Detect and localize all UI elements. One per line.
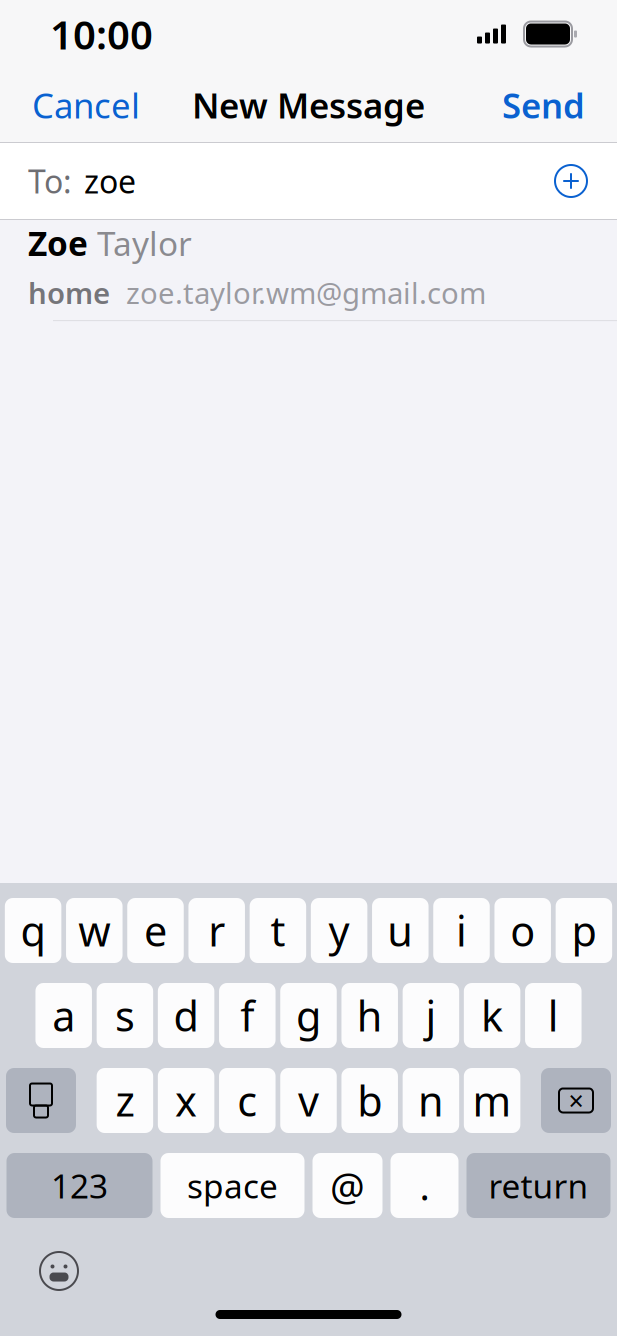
button[interactable]: o	[494, 898, 551, 963]
staticText: @	[330, 1160, 365, 1211]
button[interactable]: @	[312, 1153, 382, 1218]
staticText: p	[571, 903, 596, 958]
staticText: a	[52, 988, 75, 1043]
staticText: n	[418, 1073, 444, 1128]
staticText: x	[175, 1073, 197, 1128]
button[interactable]: d	[158, 983, 214, 1048]
staticText: f	[240, 988, 254, 1043]
staticText: o	[510, 903, 535, 958]
staticText: d	[174, 988, 199, 1043]
button[interactable]: t	[250, 898, 306, 963]
button[interactable]: v	[280, 1068, 337, 1133]
button[interactable]: w	[66, 898, 123, 963]
staticText: .	[419, 1160, 429, 1211]
staticText: Taylor	[88, 221, 192, 265]
button[interactable]: c	[219, 1068, 276, 1133]
button[interactable]: n	[403, 1068, 459, 1133]
staticText: u	[387, 903, 413, 958]
staticText: Cancel	[32, 82, 140, 128]
staticText: b	[357, 1073, 382, 1128]
staticText: zoe.taylor.wm@gmail.com	[110, 273, 486, 312]
staticText: w	[78, 903, 110, 958]
button[interactable]: u	[372, 898, 429, 963]
button[interactable]: l	[525, 983, 581, 1048]
button[interactable]: Emoji	[28, 1240, 90, 1302]
button[interactable]: x	[158, 1068, 214, 1133]
staticText: j	[425, 988, 436, 1043]
button[interactable]: Shift	[6, 1068, 76, 1133]
button[interactable]: f	[219, 983, 276, 1048]
staticText: return	[488, 1163, 588, 1208]
staticText: e	[144, 903, 167, 958]
staticText: 10:00	[50, 7, 153, 60]
button[interactable]: 123	[6, 1153, 152, 1218]
button[interactable]: h	[341, 983, 398, 1048]
staticText: Zoe	[28, 221, 88, 265]
staticText: ×	[568, 1083, 583, 1118]
staticText: q	[21, 903, 46, 958]
button[interactable]: i	[433, 898, 490, 963]
button[interactable]: Delete	[541, 1068, 611, 1133]
button[interactable]: e	[127, 898, 184, 963]
staticText: zoe	[84, 160, 136, 202]
button[interactable]: space	[160, 1153, 304, 1218]
button[interactable]: q	[5, 898, 61, 963]
button[interactable]: z	[97, 1068, 153, 1133]
staticText: m	[473, 1073, 512, 1128]
staticText: y	[329, 903, 350, 958]
button[interactable]: s	[97, 983, 153, 1048]
button[interactable]: Send	[488, 72, 599, 138]
button[interactable]: m	[464, 1068, 520, 1133]
button[interactable]: k	[464, 983, 520, 1048]
staticText: z	[115, 1073, 134, 1128]
button[interactable]: .	[390, 1153, 458, 1218]
button[interactable]: p	[556, 898, 612, 963]
staticText: home	[28, 273, 110, 312]
button[interactable]: return	[466, 1153, 610, 1218]
button[interactable]: Zoe	[0, 220, 617, 306]
button[interactable]: Cancel	[18, 72, 154, 138]
staticText: g	[296, 988, 321, 1043]
button[interactable]: Add contact	[547, 157, 595, 205]
staticText: c	[237, 1073, 257, 1128]
staticText: space	[187, 1163, 278, 1208]
staticText: 123	[51, 1163, 108, 1208]
staticText: s	[115, 988, 135, 1043]
staticText: i	[456, 903, 467, 958]
staticText: v	[298, 1073, 319, 1128]
staticText: r	[208, 903, 225, 958]
staticText: k	[481, 988, 503, 1043]
staticText: New Message	[192, 82, 425, 128]
button[interactable]: j	[403, 983, 459, 1048]
staticText: t	[270, 903, 285, 958]
button[interactable]: y	[311, 898, 367, 963]
staticText: h	[357, 988, 383, 1043]
staticText: Send	[502, 82, 585, 128]
button[interactable]: g	[280, 983, 337, 1048]
button[interactable]: a	[35, 983, 92, 1048]
staticText: To:	[28, 160, 72, 202]
button[interactable]: r	[188, 898, 245, 963]
staticText: l	[548, 988, 559, 1043]
button[interactable]: b	[341, 1068, 398, 1133]
